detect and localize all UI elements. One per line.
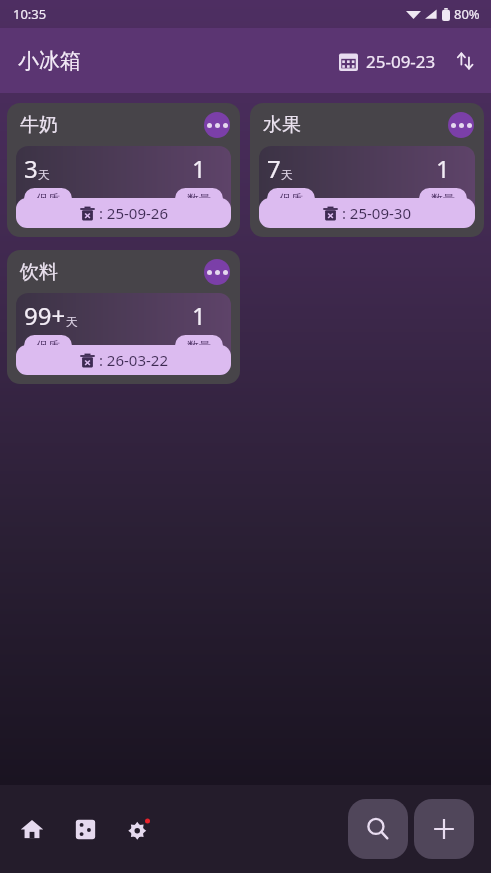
staticText: 天	[38, 167, 50, 182]
staticText: 饮料	[20, 260, 58, 284]
button[interactable]: More options	[448, 112, 474, 138]
staticText: 1	[436, 152, 450, 185]
staticText: : 25-09-30	[338, 203, 411, 223]
staticText: 水果	[263, 113, 301, 137]
staticText: : 26-03-22	[95, 350, 168, 370]
staticText: : 25-09-26	[95, 203, 168, 223]
button[interactable]: 牛奶	[7, 103, 240, 237]
staticText: 1	[192, 152, 206, 185]
button[interactable]: : 26-03-22	[16, 345, 231, 375]
staticText: 7	[267, 152, 281, 185]
staticText: 小冰箱	[18, 48, 81, 74]
button[interactable]: Home	[9, 806, 55, 852]
staticText: 数量	[431, 191, 455, 206]
button[interactable]: More options	[204, 259, 230, 285]
staticText: 数量	[187, 191, 211, 206]
button[interactable]: : 25-09-26	[16, 198, 231, 228]
button[interactable]: Add	[414, 799, 474, 859]
button[interactable]: : 25-09-30	[259, 198, 475, 228]
button[interactable]: Search	[348, 799, 408, 859]
button[interactable]: More options	[204, 112, 230, 138]
staticText: 保质	[279, 191, 303, 206]
button[interactable]: 水果	[250, 103, 484, 237]
staticText: 数量	[187, 338, 211, 353]
button[interactable]: Settings	[115, 806, 161, 852]
staticText: 1	[192, 299, 206, 332]
staticText: 天	[281, 167, 293, 182]
staticText: 保质	[36, 191, 60, 206]
button[interactable]: Random	[62, 806, 108, 852]
staticText: 天	[66, 314, 78, 329]
staticText: 10:35	[13, 5, 47, 23]
button[interactable]: 25-09-23	[334, 45, 441, 78]
button[interactable]: 饮料	[7, 250, 240, 384]
staticText: 牛奶	[20, 113, 58, 137]
staticText: 25-09-23	[366, 50, 436, 73]
staticText: 保质	[36, 338, 60, 353]
staticText: 3	[24, 152, 38, 185]
button[interactable]: Sort	[448, 44, 482, 78]
staticText: 99+	[24, 299, 66, 332]
staticText: 80%	[454, 5, 480, 23]
